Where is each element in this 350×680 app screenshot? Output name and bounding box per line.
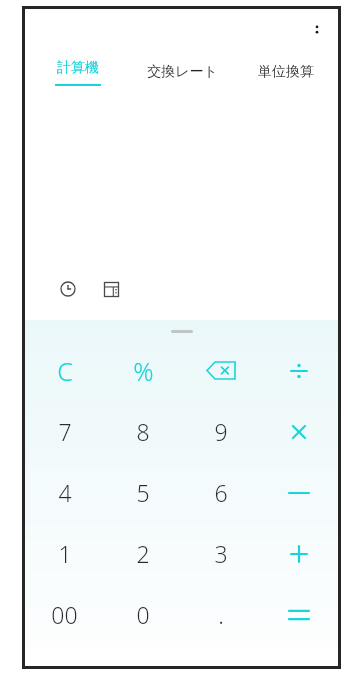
staticText: 0 bbox=[136, 599, 150, 630]
staticText: 00 bbox=[51, 599, 78, 630]
button[interactable]: Equals bbox=[260, 584, 338, 645]
staticText: 計算機 bbox=[57, 59, 99, 77]
button[interactable]: 8 bbox=[104, 401, 182, 462]
button[interactable]: 0 bbox=[104, 584, 182, 645]
staticText: 7 bbox=[58, 416, 72, 447]
button[interactable]: 単位換算 bbox=[234, 47, 338, 97]
button[interactable]: 6 bbox=[182, 462, 260, 523]
button[interactable]: Plus bbox=[260, 523, 338, 584]
button[interactable]: Minus bbox=[260, 462, 338, 523]
button[interactable]: 1 bbox=[25, 523, 104, 584]
button[interactable]: 00 bbox=[25, 584, 104, 645]
staticText: 単位換算 bbox=[258, 63, 314, 81]
staticText: 1 bbox=[58, 538, 72, 569]
button[interactable]: 5 bbox=[104, 462, 182, 523]
staticText: 交換レート bbox=[147, 63, 218, 81]
staticText: 2 bbox=[136, 538, 150, 569]
staticText: 4 bbox=[58, 477, 72, 508]
staticText: % bbox=[133, 354, 154, 388]
staticText: 9 bbox=[214, 416, 228, 447]
button[interactable]: Multiply bbox=[260, 401, 338, 462]
button[interactable]: 交換レート bbox=[130, 47, 234, 97]
button[interactable]: 4 bbox=[25, 462, 104, 523]
staticText: 8 bbox=[136, 416, 150, 447]
button[interactable]: Backspace bbox=[182, 340, 260, 401]
button[interactable]: . bbox=[182, 584, 260, 645]
staticText: 6 bbox=[214, 477, 228, 508]
button[interactable]: 計算機 bbox=[25, 47, 130, 97]
button[interactable]: Keypad bbox=[96, 274, 126, 304]
staticText: 5 bbox=[136, 477, 150, 508]
button[interactable]: 9 bbox=[182, 401, 260, 462]
staticText: . bbox=[218, 599, 224, 630]
button[interactable]: History bbox=[53, 274, 83, 304]
staticText: 3 bbox=[214, 538, 228, 569]
button[interactable]: % bbox=[104, 340, 182, 401]
button[interactable]: 2 bbox=[104, 523, 182, 584]
button[interactable]: Divide bbox=[260, 340, 338, 401]
button[interactable]: More options bbox=[302, 15, 332, 45]
button[interactable]: C bbox=[25, 340, 104, 401]
staticText: C bbox=[57, 354, 73, 388]
button[interactable]: 7 bbox=[25, 401, 104, 462]
button[interactable]: 3 bbox=[182, 523, 260, 584]
